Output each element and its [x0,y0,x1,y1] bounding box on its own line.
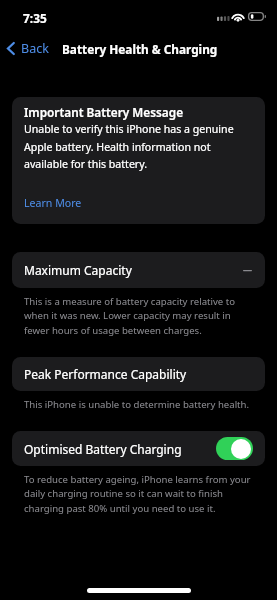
staticText: Peak Performance Capability [24,366,253,382]
button[interactable]: Optimised Battery Charging toggle [216,437,253,460]
staticText: Battery Health & Charging [62,41,218,57]
button[interactable]: Back [0,37,57,60]
staticText: To reduce battery ageing, iPhone learns … [24,473,257,515]
staticText: Learn More [24,196,82,210]
button[interactable]: Learn More [24,196,82,210]
button[interactable]: Maximum Capacity [12,252,265,288]
staticText: Maximum Capacity [24,262,243,278]
staticText: Back [21,40,49,57]
staticText: Optimised Battery Charging [24,441,216,457]
button[interactable]: Peak Performance Capability [12,357,265,391]
staticText: This is a measure of battery capacity re… [24,295,257,337]
staticText: Important Battery Message [24,104,184,120]
staticText: 7:35 [23,10,47,26]
staticText: This iPhone is unable to determine batte… [24,398,257,411]
staticText: Unable to verify this iPhone has a genui… [24,122,253,171]
